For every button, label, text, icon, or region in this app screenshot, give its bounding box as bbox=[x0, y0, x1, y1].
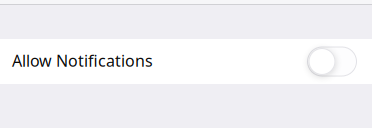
staticText: Allow Notifications bbox=[12, 50, 153, 71]
button[interactable]: Allow Notifications bbox=[0, 39, 372, 84]
